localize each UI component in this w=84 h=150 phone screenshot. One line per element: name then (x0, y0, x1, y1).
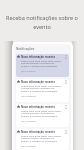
staticText: Nova informação recente (21, 80, 55, 84)
staticText: há 5 minutos (21, 144, 36, 147)
staticText: Clique aqui para saber mais sobre a prog… (21, 134, 62, 143)
staticText: Notificações (16, 47, 35, 51)
staticText: Nova informação recente (21, 55, 55, 59)
other: More options (65, 130, 67, 134)
button[interactable]: Nova informação recente (16, 79, 69, 102)
staticText: há 5 minutos (21, 94, 36, 97)
staticText: Nova informação recente (21, 105, 55, 109)
other: More options (65, 105, 67, 109)
button[interactable]: Nova informação recente (16, 129, 69, 150)
staticText: Clique aqui para saber mais sobre a prog… (21, 59, 62, 68)
other: More options (65, 55, 67, 59)
staticText: há 5 minutos (21, 119, 36, 122)
staticText: Clique aqui para saber mais sobre a prog… (21, 109, 62, 118)
staticText: Clique aqui para saber mais sobre a prog… (21, 84, 62, 93)
staticText: há 5 minutos (21, 69, 36, 72)
other: More options (65, 80, 67, 84)
button[interactable]: Nova informação recente (16, 104, 69, 127)
button[interactable]: Nova informação recente (16, 54, 69, 77)
staticText: Nova informação recente (21, 130, 55, 134)
staticText: Receba notificações sobre o evento (0, 14, 84, 31)
